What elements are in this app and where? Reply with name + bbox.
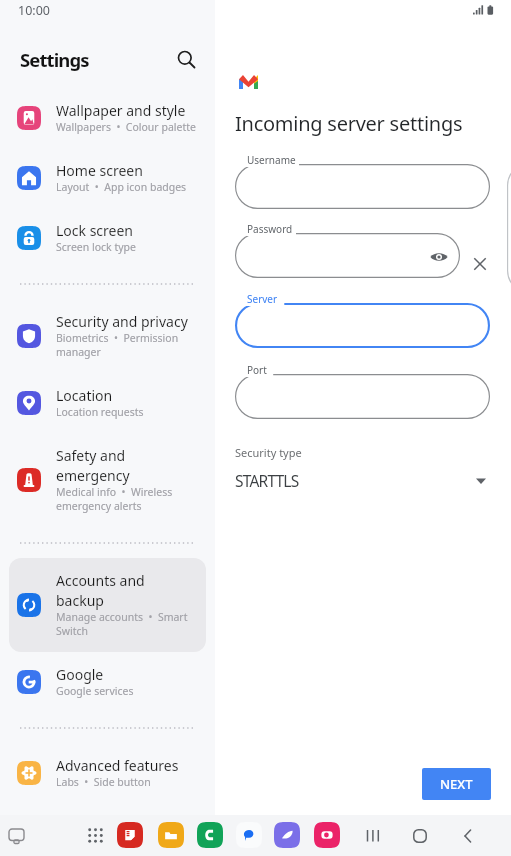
staticText: Server bbox=[247, 292, 278, 306]
staticText: Biometrics • Permission manager bbox=[56, 331, 196, 359]
staticText: STARTTLS bbox=[235, 470, 299, 491]
button[interactable]: internet bbox=[274, 822, 300, 848]
staticText: Safety and emergency bbox=[56, 446, 196, 485]
staticText: Home screen bbox=[56, 161, 143, 180]
button[interactable]: Advanced features bbox=[9, 743, 206, 803]
button[interactable]: Home bbox=[398, 815, 441, 856]
staticText: Location bbox=[56, 386, 113, 405]
button[interactable]: folder bbox=[158, 822, 184, 848]
staticText: Layout • App icon badges bbox=[56, 180, 187, 194]
staticText: Username bbox=[247, 153, 296, 167]
staticText: Screen lock type bbox=[56, 240, 136, 254]
button[interactable]: phone bbox=[197, 822, 223, 848]
button[interactable]: Show password bbox=[429, 247, 449, 267]
button[interactable]: camera bbox=[314, 822, 340, 848]
staticText: Port bbox=[247, 363, 267, 377]
staticText: Location requests bbox=[56, 405, 144, 419]
button[interactable]: Back bbox=[446, 815, 489, 856]
button[interactable]: Home screen bbox=[9, 148, 206, 208]
staticText: Google services bbox=[56, 684, 134, 698]
button[interactable]: doc bbox=[117, 822, 143, 848]
staticText: Google bbox=[56, 665, 104, 684]
button[interactable]: Search bbox=[169, 42, 203, 76]
staticText: Advanced features bbox=[56, 756, 179, 775]
button[interactable]: All apps bbox=[82, 822, 109, 849]
staticText: 10:00 bbox=[18, 2, 50, 19]
button[interactable]: Location bbox=[9, 373, 206, 433]
button[interactable]: chat bbox=[236, 822, 262, 848]
staticText: Accounts and backup bbox=[56, 571, 196, 610]
staticText: Lock screen bbox=[56, 221, 134, 240]
button[interactable]: Google bbox=[9, 652, 206, 712]
button[interactable]: Security and privacy bbox=[9, 299, 206, 373]
staticText: Security and privacy bbox=[56, 312, 188, 331]
button[interactable]: Clear bbox=[468, 252, 492, 276]
button[interactable]: NEXT bbox=[422, 768, 491, 800]
staticText: Security type bbox=[235, 445, 302, 460]
staticText: Password bbox=[247, 222, 293, 236]
staticText: Wallpapers • Colour palette bbox=[56, 120, 196, 134]
button[interactable]: Recent apps bbox=[2, 822, 30, 850]
staticText: Incoming server settings bbox=[235, 110, 463, 137]
staticText: Manage accounts • Smart Switch bbox=[56, 610, 196, 638]
button[interactable]: Safety and emergency bbox=[9, 433, 206, 527]
staticText: Wallpaper and style bbox=[56, 101, 186, 120]
staticText: Medical info • Wireless emergency alerts bbox=[56, 485, 196, 513]
button[interactable]: Accounts and backup bbox=[9, 558, 206, 652]
button[interactable]: STARTTLS bbox=[235, 468, 486, 493]
staticText: Settings bbox=[20, 47, 89, 72]
button[interactable]: Recents bbox=[351, 815, 394, 856]
button[interactable]: Wallpaper and style bbox=[9, 88, 206, 148]
staticText: NEXT bbox=[440, 775, 473, 793]
staticText: Labs • Side button bbox=[56, 775, 151, 789]
button[interactable]: Lock screen bbox=[9, 208, 206, 268]
